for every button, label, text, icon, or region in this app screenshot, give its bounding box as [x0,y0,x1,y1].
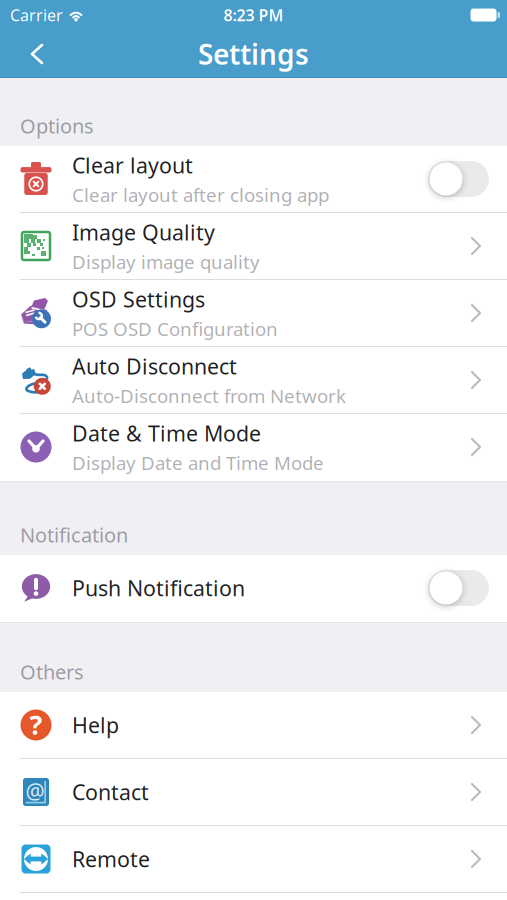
button[interactable]: Date & Time Mode [0,414,507,481]
staticText: Contact [72,778,149,806]
button[interactable]: Clear layout [428,161,489,197]
staticText: @ [25,777,44,805]
staticText: Options [20,112,94,139]
staticText: Carrier [10,4,63,26]
button[interactable]: ? [0,692,507,759]
staticText: Display Date and Time Mode [72,450,324,475]
staticText: 8:23 PM [223,4,283,26]
staticText: Notification [20,521,128,548]
button[interactable]: Image Quality [0,213,507,280]
staticText: Help [72,711,119,739]
staticText: Image Quality [72,218,215,246]
staticText: Settings [198,35,309,73]
staticText: Clear layout after closing app [72,182,329,207]
button[interactable]: Remote [0,826,507,893]
staticText: Date & Time Mode [72,419,261,447]
staticText: OSD Settings [72,285,205,313]
button[interactable]: Back [0,33,44,75]
staticText: Auto-Disconnect from Network [72,383,346,408]
staticText: Remote [72,845,150,873]
staticText: POS OSD Configuration [72,316,278,341]
staticText: Others [20,658,84,685]
button[interactable]: Push Notification [428,570,489,606]
staticText: Clear layout [72,151,193,179]
button[interactable]: OSD Settings [0,280,507,347]
staticText: Display image quality [72,249,260,274]
staticText: ? [29,707,42,742]
button[interactable]: @ [0,759,507,826]
button[interactable]: Clear layout [0,146,507,213]
staticText: Push Notification [72,574,245,602]
button[interactable]: Push Notification [0,555,507,622]
staticText: Auto Disconnect [72,352,237,380]
button[interactable]: Auto Disconnect [0,347,507,414]
